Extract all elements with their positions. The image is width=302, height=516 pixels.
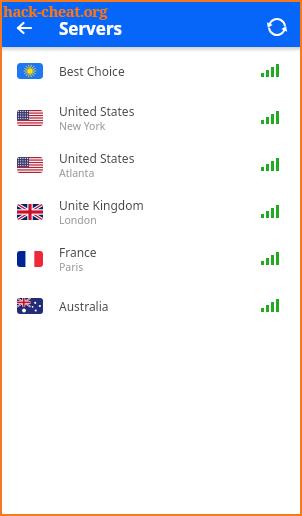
staticText: Unite Kingdom [59,197,144,213]
staticText: New York [59,119,106,133]
button[interactable]: Australia [0,282,302,329]
button[interactable]: Unite Kingdom [0,188,302,235]
button[interactable]: France [0,235,302,282]
staticText: Paris [59,260,84,274]
staticText: Servers [59,17,123,40]
staticText: Atlanta [59,166,95,180]
staticText: Best Choice [59,63,125,79]
button[interactable]: United States [0,141,302,188]
button[interactable]: United States [0,94,302,141]
staticText: United States [59,150,135,166]
button[interactable] [262,12,292,42]
staticText: United States [59,103,135,119]
staticText: hack-cheat.org [3,1,108,21]
button[interactable]: Best Choice [0,47,302,94]
staticText: France [59,244,97,260]
button[interactable] [9,12,40,43]
staticText: London [59,213,97,227]
staticText: Australia [59,298,109,314]
